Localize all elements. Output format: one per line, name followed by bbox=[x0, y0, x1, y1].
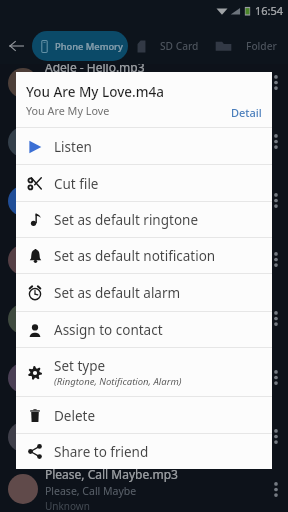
button[interactable]: More options bbox=[264, 171, 288, 230]
button[interactable]: Set as default notification bbox=[16, 238, 272, 274]
staticText: Unknown bbox=[45, 499, 90, 512]
staticText: Set type bbox=[54, 357, 106, 375]
button[interactable]: Cut file bbox=[16, 165, 272, 202]
staticText: Set as default ringtone bbox=[54, 211, 199, 229]
staticText: Set as default notification bbox=[54, 247, 216, 265]
staticText: Unknown bbox=[45, 269, 90, 283]
button[interactable]: Perfect.mp3 bbox=[0, 230, 288, 289]
button[interactable]: More options bbox=[264, 53, 288, 112]
staticText: Unknown bbox=[45, 92, 90, 106]
staticText: Unknown bbox=[45, 328, 90, 342]
staticText: Unknown bbox=[45, 446, 90, 460]
staticText: Unknown bbox=[45, 210, 90, 224]
button[interactable]: Set as default alarm bbox=[16, 274, 272, 312]
button[interactable]: More options bbox=[264, 230, 288, 289]
button[interactable]: Back bbox=[0, 28, 32, 64]
button[interactable]: More options bbox=[264, 112, 288, 171]
staticText: You Are My Love.m4a bbox=[26, 83, 164, 101]
staticText: Unknown bbox=[45, 387, 90, 401]
button[interactable]: Assign to contact bbox=[16, 312, 272, 348]
staticText: Ed Sheeran bbox=[45, 254, 101, 268]
button[interactable]: More options bbox=[264, 407, 288, 466]
button[interactable]: Folder bbox=[214, 28, 278, 64]
button[interactable]: Delete bbox=[16, 397, 272, 434]
staticText: Share to friend bbox=[54, 443, 149, 461]
button[interactable]: Set as default ringtone bbox=[16, 202, 272, 238]
staticText: 16:54 bbox=[255, 3, 284, 18]
staticText: Shape of You.mp3 bbox=[45, 118, 148, 134]
staticText: SD Card bbox=[160, 39, 199, 53]
staticText: You Are My Love bbox=[45, 195, 126, 209]
staticText: Please, Call Maybe.mp3 bbox=[45, 466, 178, 482]
button[interactable]: Share to friend bbox=[16, 434, 272, 469]
staticText: Rolling in the Deep.mp3 bbox=[45, 413, 181, 429]
staticText: Assign to contact bbox=[54, 321, 163, 339]
button[interactable]: Phone Memory bbox=[32, 31, 128, 61]
button[interactable]: You Are My Love.m4a bbox=[0, 171, 288, 230]
staticText: Ed Sheeran bbox=[45, 372, 101, 386]
staticText: Adele bbox=[45, 313, 73, 327]
button[interactable]: Detail bbox=[231, 105, 272, 128]
staticText: Adele - Hello.mp3 bbox=[45, 59, 145, 75]
button[interactable]: More options bbox=[264, 466, 288, 512]
staticText: Please, Call Maybe bbox=[45, 484, 137, 498]
staticText: Thinking Out Loud.mp3 bbox=[45, 354, 179, 370]
staticText: Listen bbox=[54, 138, 92, 156]
button[interactable]: Thinking Out Loud.mp3 bbox=[0, 348, 288, 407]
button[interactable]: Please, Call Maybe.mp3 bbox=[0, 466, 288, 512]
staticText: Adele bbox=[45, 431, 73, 445]
staticText: Delete bbox=[54, 407, 96, 425]
button[interactable]: Rolling in the Deep.mp3 bbox=[0, 407, 288, 466]
staticText: Unknown bbox=[45, 151, 90, 165]
staticText: Adele bbox=[45, 77, 73, 91]
staticText: Folder bbox=[246, 39, 277, 53]
button[interactable]: SD Card bbox=[135, 28, 200, 64]
button[interactable]: Adele - Hello.mp3 bbox=[0, 53, 288, 112]
staticText: (Ringtone, Notification, Alarm) bbox=[54, 375, 182, 388]
button[interactable]: Someone Like You.mp3 bbox=[0, 289, 288, 348]
button[interactable]: More options bbox=[264, 289, 288, 348]
staticText: You Are My Love.m4a bbox=[45, 177, 166, 193]
button[interactable]: Listen bbox=[16, 128, 272, 165]
staticText: Cut file bbox=[54, 175, 99, 193]
staticText: Set as default alarm bbox=[54, 284, 181, 302]
staticText: Perfect.mp3 bbox=[45, 236, 114, 252]
button[interactable]: Set type bbox=[16, 348, 272, 397]
staticText: Ed Sheeran bbox=[45, 136, 101, 150]
staticText: Phone Memory bbox=[55, 40, 123, 53]
staticText: Someone Like You.mp3 bbox=[45, 295, 177, 311]
staticText: You Are My Love bbox=[26, 103, 110, 118]
button[interactable]: Shape of You.mp3 bbox=[0, 112, 288, 171]
button[interactable]: More options bbox=[264, 348, 288, 407]
